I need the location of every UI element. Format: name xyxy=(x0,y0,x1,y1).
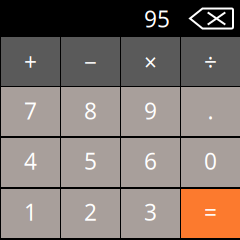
staticText: 1 xyxy=(24,197,37,227)
staticText: 4 xyxy=(24,146,37,176)
staticText: 7 xyxy=(24,95,37,126)
button[interactable]: 9 xyxy=(121,87,180,136)
button[interactable]: 2 xyxy=(61,189,120,238)
staticText: ÷ xyxy=(204,47,217,77)
button[interactable]: ÷ xyxy=(181,37,240,86)
button[interactable]: 8 xyxy=(61,87,120,136)
button[interactable]: 3 xyxy=(121,189,180,238)
button[interactable]: × xyxy=(121,37,180,86)
button[interactable]: − xyxy=(61,37,120,86)
button[interactable]: 5 xyxy=(61,138,120,187)
staticText: 3 xyxy=(144,197,157,227)
staticText: − xyxy=(84,47,97,77)
staticText: × xyxy=(144,47,157,77)
button[interactable]: 0 xyxy=(181,138,240,187)
staticText: 9 xyxy=(144,95,157,126)
button[interactable]: . xyxy=(181,87,240,136)
staticText: 95 xyxy=(144,4,170,34)
staticText: 6 xyxy=(144,146,157,176)
button[interactable]: = xyxy=(181,189,240,238)
button[interactable]: 6 xyxy=(121,138,180,187)
button[interactable]: 4 xyxy=(1,138,60,187)
staticText: 5 xyxy=(84,146,97,176)
staticText: . xyxy=(207,95,213,126)
button[interactable]: Delete xyxy=(189,7,234,29)
staticText: = xyxy=(204,197,217,227)
staticText: 2 xyxy=(84,197,97,227)
button[interactable]: 1 xyxy=(1,189,60,238)
staticText: 0 xyxy=(204,146,217,176)
staticText: 8 xyxy=(84,95,97,126)
staticText: + xyxy=(24,47,37,77)
button[interactable]: 7 xyxy=(1,87,60,136)
button[interactable]: + xyxy=(1,37,60,86)
